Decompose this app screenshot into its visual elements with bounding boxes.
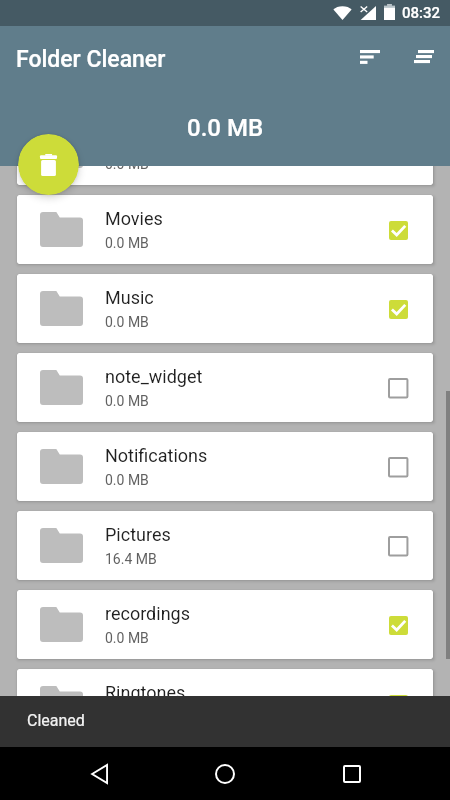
button[interactable]: Home	[201, 750, 249, 798]
staticText: 0.0 MB	[105, 630, 149, 646]
staticText: Cleaned	[27, 711, 85, 730]
button[interactable]: Music	[17, 274, 433, 343]
button[interactable]: Select Ringtones	[374, 680, 422, 728]
staticText: note_widget	[105, 366, 203, 387]
staticText: 0.0 MB	[187, 114, 264, 142]
staticText: recordings	[105, 603, 190, 624]
button[interactable]: Select recordings	[374, 601, 422, 649]
button[interactable]: Back	[75, 750, 123, 798]
staticText: Movies	[105, 208, 163, 229]
staticText: 0.0 MB	[105, 156, 149, 172]
button[interactable]: Select Downloads	[374, 127, 422, 175]
button[interactable]: Downloads	[17, 116, 433, 185]
staticText: Music	[105, 287, 154, 308]
staticText: 0.0 MB	[105, 314, 149, 330]
button[interactable]: Movies	[17, 195, 433, 264]
button[interactable]: note_widget	[17, 353, 433, 422]
staticText: Notifications	[105, 445, 208, 466]
staticText: Pictures	[105, 524, 171, 545]
button[interactable]: Notifications	[17, 432, 433, 501]
button[interactable]: Select Music	[374, 285, 422, 333]
button[interactable]: Select Movies	[374, 206, 422, 254]
button[interactable]: Pictures	[17, 511, 433, 580]
button[interactable]: Recents	[328, 750, 376, 798]
staticText: Folder Cleaner	[16, 46, 166, 73]
staticText: 0.0 MB	[105, 235, 149, 251]
staticText: 0.0 MB	[105, 393, 149, 409]
button[interactable]: Select Pictures	[374, 522, 422, 570]
staticText: 08:32	[402, 4, 441, 22]
staticText: Downloads	[105, 129, 195, 150]
button[interactable]: Ringtones	[17, 669, 433, 738]
button[interactable]: Clean	[18, 134, 79, 195]
button[interactable]: Sort by name	[346, 33, 394, 81]
button[interactable]: Select Notifications	[374, 443, 422, 491]
staticText: 0.0 MB	[105, 472, 149, 488]
staticText: Ringtones	[105, 682, 186, 703]
button[interactable]: Select note_widget	[374, 364, 422, 412]
staticText: 16.4 MB	[105, 551, 157, 567]
button[interactable]: Sort by size	[400, 33, 448, 81]
button[interactable]: recordings	[17, 590, 433, 659]
